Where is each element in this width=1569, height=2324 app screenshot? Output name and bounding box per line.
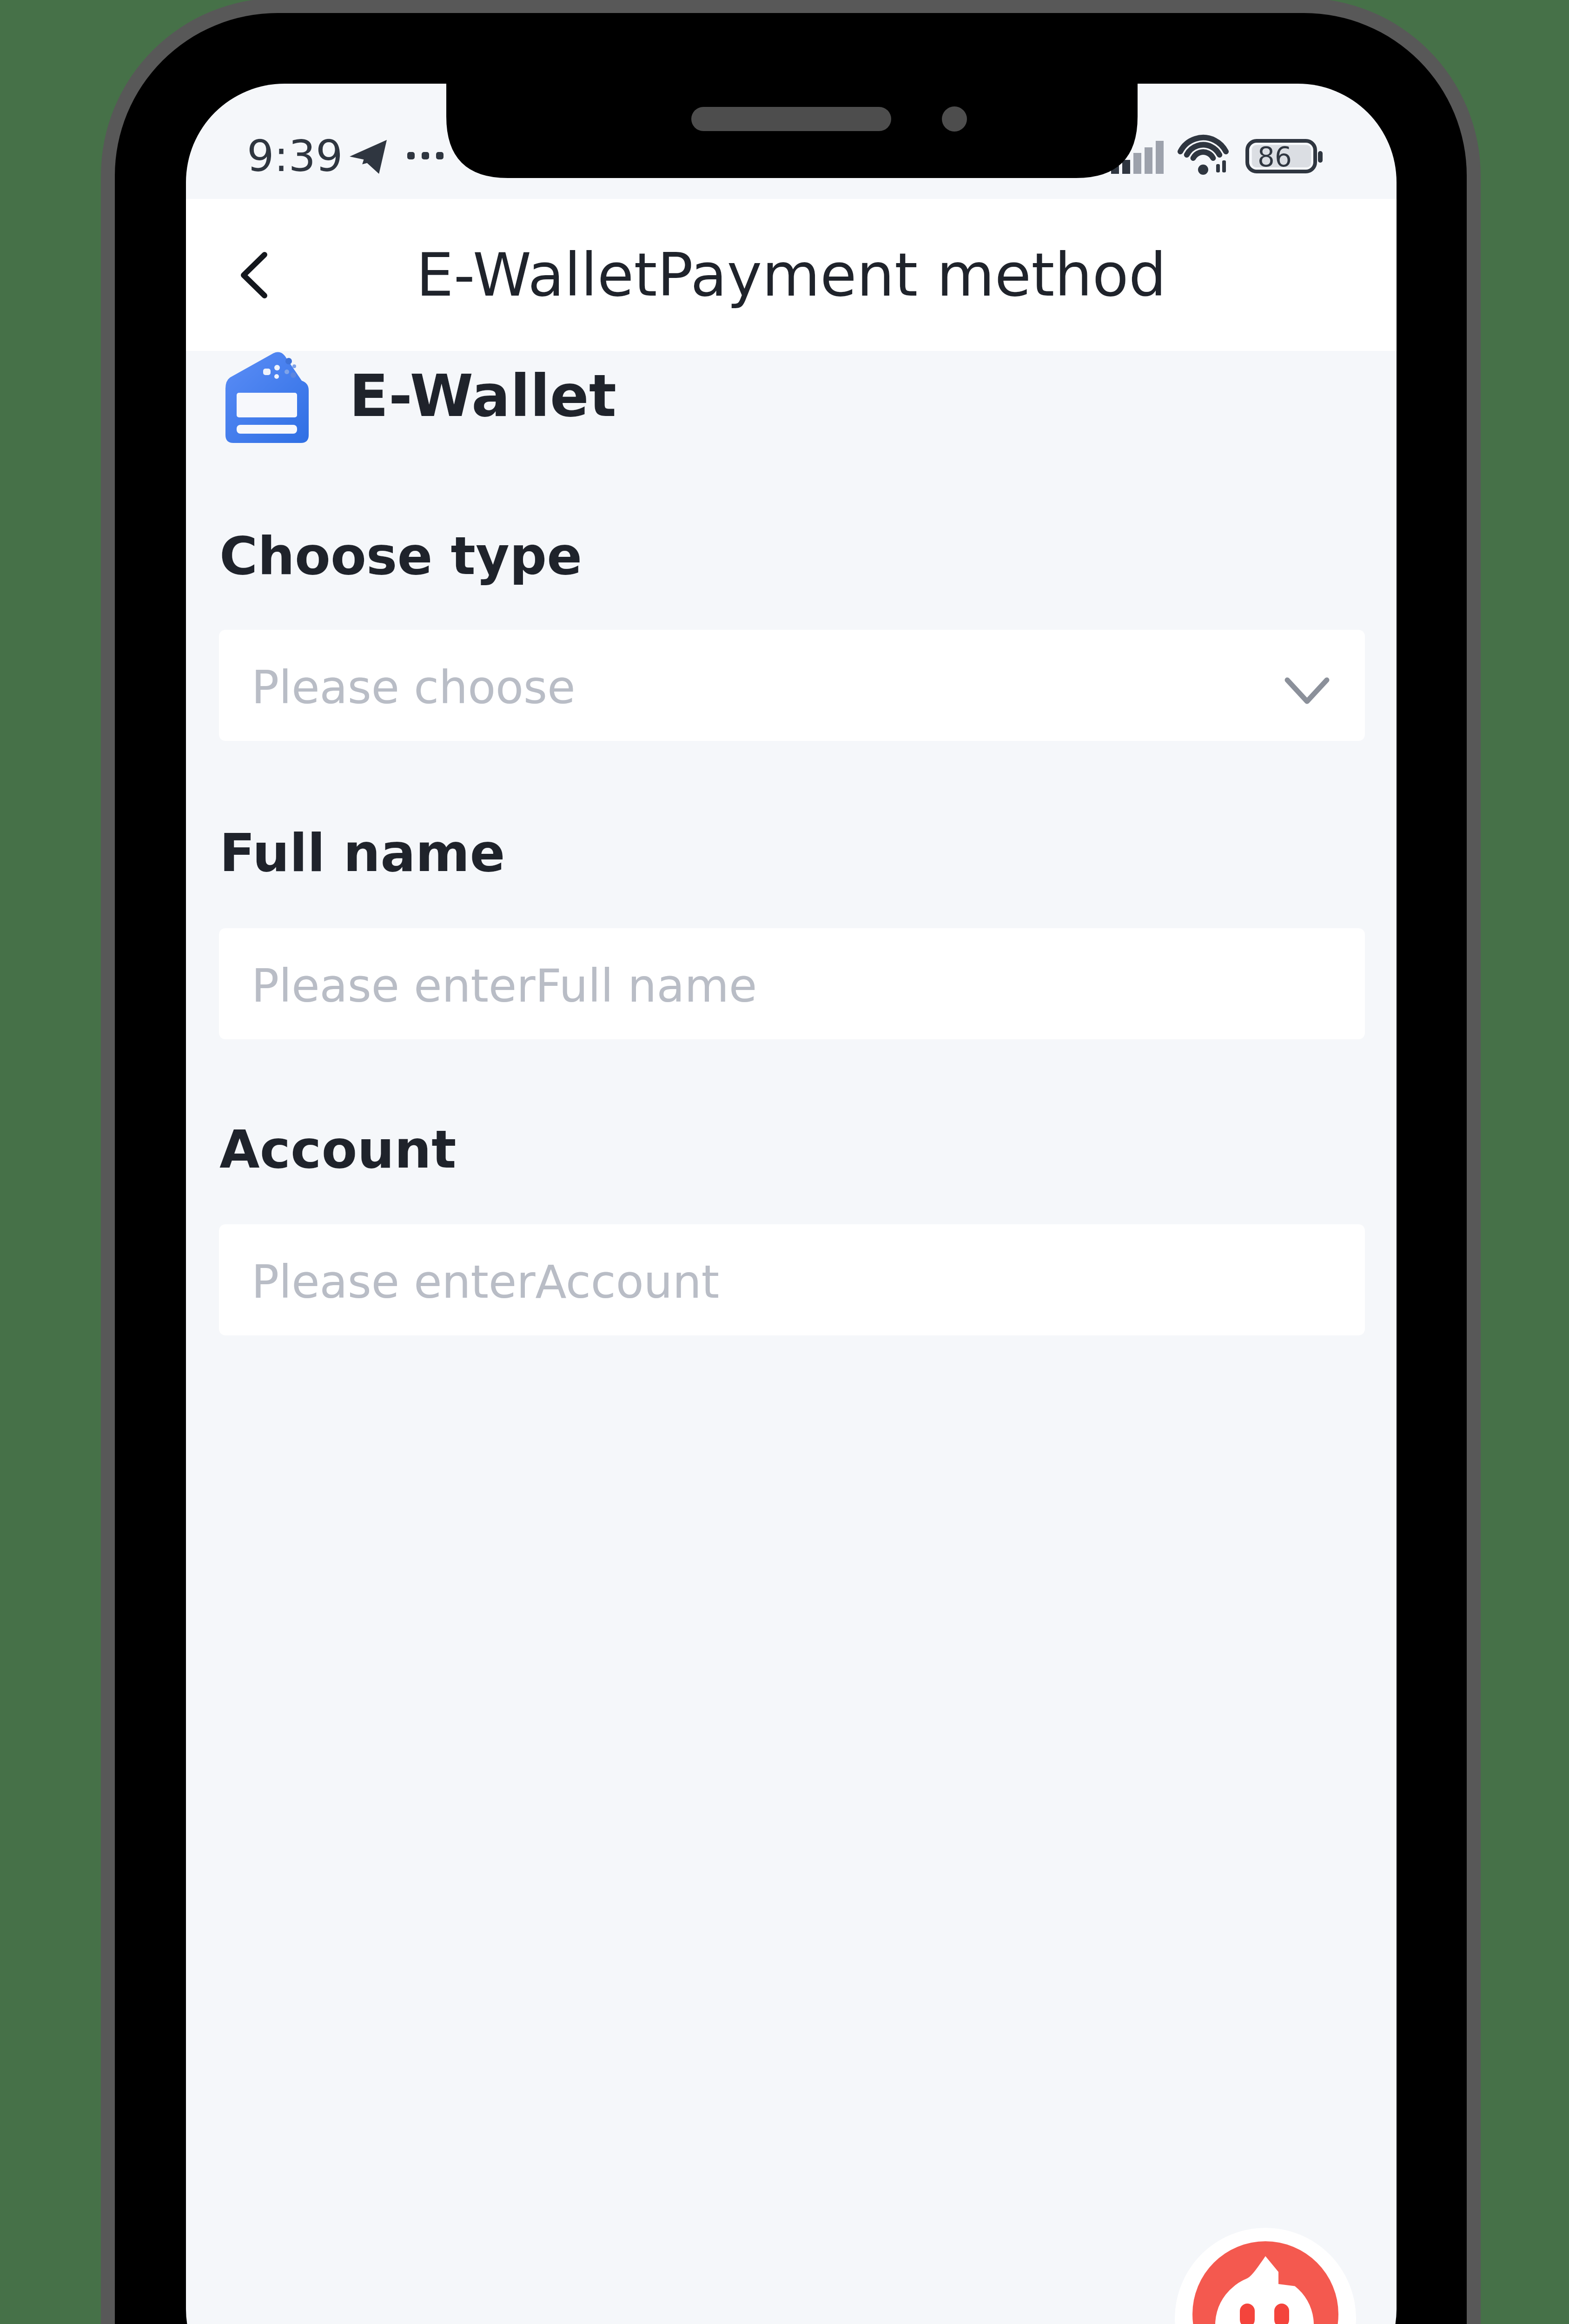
button[interactable]: Please choose (219, 630, 1365, 741)
button[interactable]: Back (207, 199, 300, 351)
staticText: 9:39 (247, 132, 343, 181)
button[interactable]: Customer support chat (1175, 2228, 1356, 2324)
staticText: Please enterFull name (252, 959, 757, 1012)
staticText: E-WalletPayment method (186, 240, 1397, 310)
staticText: E-Wallet (349, 363, 617, 429)
staticText: Please choose (252, 661, 576, 714)
staticText: Choose type (219, 526, 583, 586)
button[interactable]: Please enterAccount (219, 1224, 1365, 1335)
button[interactable]: Please enterFull name (219, 928, 1365, 1039)
staticText: Account (219, 1119, 457, 1180)
staticText: Please enterAccount (252, 1255, 720, 1308)
staticText: Full name (219, 823, 505, 883)
staticText: 86 (1258, 141, 1292, 172)
